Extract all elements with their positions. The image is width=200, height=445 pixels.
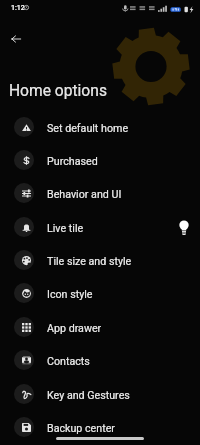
staticText: Icon style <box>47 288 93 301</box>
button[interactable]: Purchased <box>0 143 200 176</box>
button[interactable]: Key and Gestures <box>0 377 200 410</box>
button[interactable]: Tile size and style <box>0 243 200 276</box>
staticText: Tile size and style <box>47 255 132 268</box>
button[interactable]: Set default home <box>0 110 200 143</box>
button[interactable]: Back <box>0 23 31 54</box>
staticText: Set default home <box>47 122 129 135</box>
button[interactable]: Contacts <box>0 343 200 376</box>
staticText: Backup center <box>47 422 115 435</box>
staticText: Home options <box>9 82 107 100</box>
staticText: Contacts <box>47 355 90 368</box>
button[interactable]: Icon style <box>0 276 200 309</box>
button[interactable]: App drawer <box>0 310 200 343</box>
staticText: Behavior and UI <box>47 188 122 201</box>
staticText: 1:12 <box>11 4 25 12</box>
button[interactable]: Backup center <box>0 410 200 443</box>
staticText: Key and Gestures <box>47 389 130 402</box>
button[interactable]: Behavior and UI <box>0 176 200 209</box>
staticText: Purchased <box>47 155 98 168</box>
staticText: App drawer <box>47 322 102 335</box>
staticText: Live tile <box>47 222 84 235</box>
button[interactable]: Live tile <box>0 210 200 243</box>
